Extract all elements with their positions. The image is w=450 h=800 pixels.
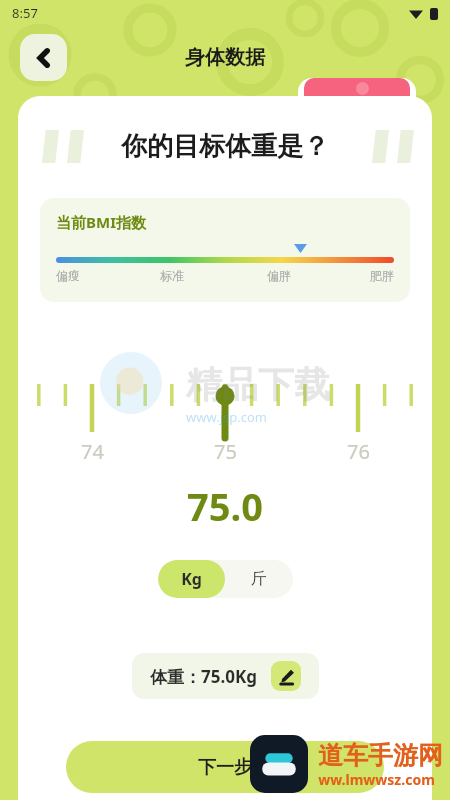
button[interactable]: Kg bbox=[158, 560, 225, 598]
staticText: 精品下载 bbox=[186, 362, 330, 407]
staticText: 道车手游网 bbox=[318, 740, 443, 771]
staticText: 你的目标体重是？ bbox=[121, 130, 329, 163]
staticText: 身体数据 bbox=[185, 45, 265, 70]
staticText: 74 bbox=[81, 438, 104, 465]
staticText: 当前BMI指数 bbox=[56, 212, 146, 232]
staticText: ww.lmwwsz.com bbox=[318, 770, 435, 789]
button[interactable]: 下一步 bbox=[66, 741, 384, 793]
staticText: 76 bbox=[347, 438, 370, 465]
button[interactable]: Edit weight bbox=[271, 661, 301, 691]
button[interactable]: 体重：75.0Kg bbox=[132, 653, 319, 699]
staticText: 8:57 bbox=[12, 4, 38, 22]
staticText: 肥胖 bbox=[370, 268, 394, 283]
staticText: 标准 bbox=[160, 268, 184, 283]
button[interactable]: 斤 bbox=[225, 560, 293, 598]
staticText: 偏瘦 bbox=[56, 268, 80, 283]
staticText: Kg bbox=[181, 568, 202, 590]
staticText: 75.0 bbox=[187, 480, 263, 532]
staticText: www.jsp.com bbox=[186, 408, 267, 426]
staticText: 体重：75.0Kg bbox=[150, 665, 257, 688]
staticText: 下一步 bbox=[198, 756, 252, 779]
staticText: 偏胖 bbox=[267, 268, 291, 283]
staticText: 斤 bbox=[251, 569, 267, 589]
button[interactable]: Back bbox=[20, 34, 67, 81]
staticText: 75 bbox=[214, 438, 237, 465]
